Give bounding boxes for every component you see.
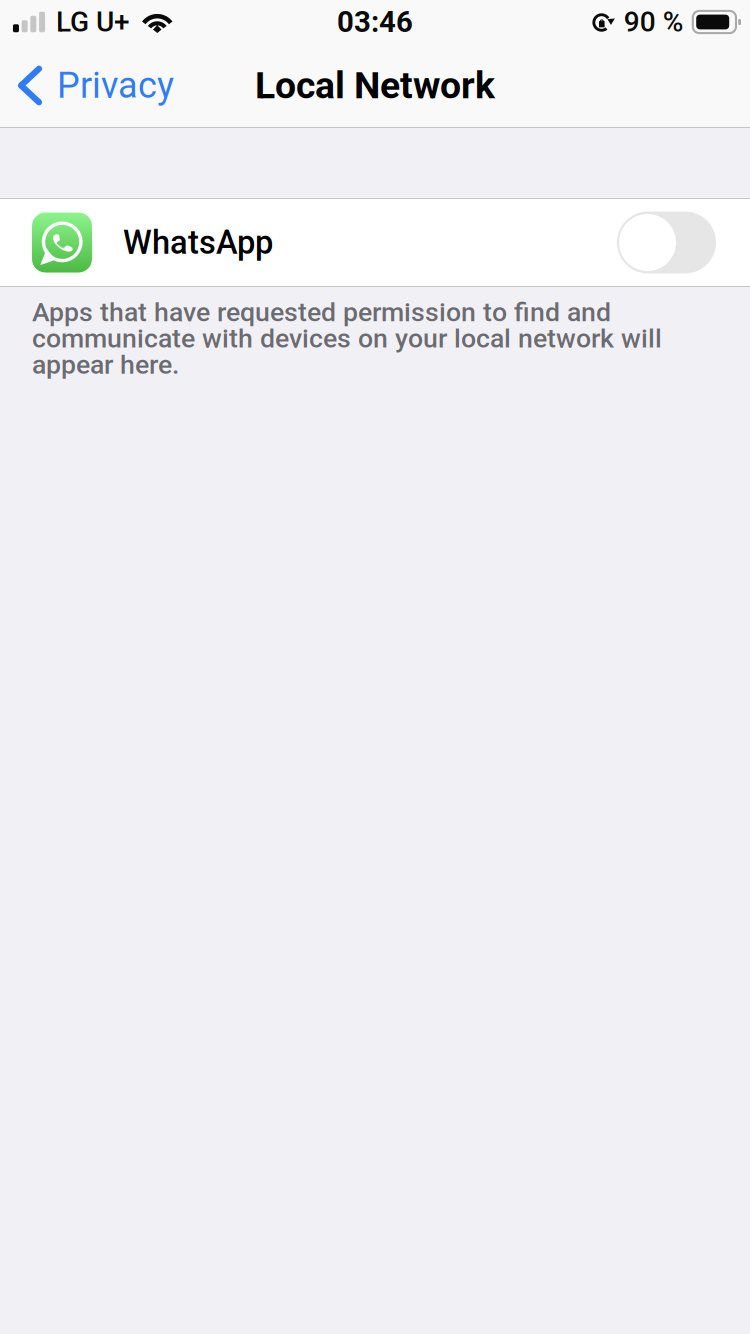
button[interactable]: Privacy [0,44,190,127]
staticText: Apps that have requested permission to f… [32,299,662,378]
staticText: LG U+ [56,6,130,38]
staticText: 03:46 [337,5,413,39]
staticText: Privacy [57,64,174,107]
staticText: WhatsApp [123,223,273,262]
staticText: Local Network [255,64,495,107]
staticText: 90 % [624,6,684,38]
button[interactable]: WhatsApp local network access [617,211,750,273]
